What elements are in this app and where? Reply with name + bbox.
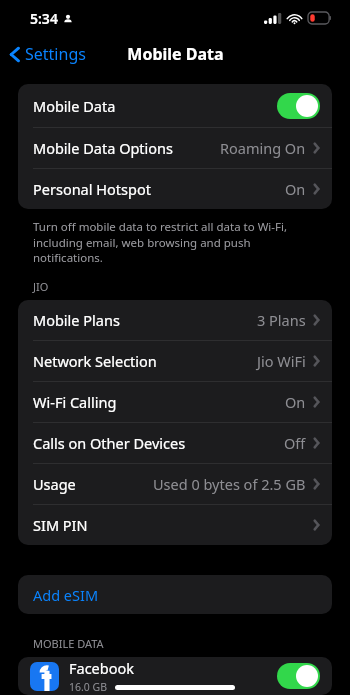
- staticText: On: [285, 392, 306, 412]
- staticText: Jio WiFi: [257, 351, 306, 371]
- staticText: Off: [284, 433, 306, 453]
- staticText: Mobile Data: [33, 96, 116, 116]
- button[interactable]: Usage: [18, 464, 332, 504]
- staticText: Mobile Data Options: [33, 138, 174, 158]
- button[interactable]: Settings: [0, 39, 94, 69]
- staticText: Calls on Other Devices: [33, 433, 186, 453]
- staticText: 3 Plans: [257, 310, 306, 330]
- button[interactable]: Mobile Plans: [18, 300, 332, 340]
- button[interactable]: Personal Hotspot: [18, 169, 332, 209]
- staticText: Wi-Fi Calling: [33, 392, 117, 412]
- staticText: SIM PIN: [33, 515, 88, 535]
- button[interactable]: SIM PIN: [18, 505, 332, 545]
- button[interactable]: Mobile Data: [18, 84, 332, 127]
- staticText: MOBILE DATA: [33, 636, 104, 651]
- button[interactable]: Network Selection: [18, 341, 332, 381]
- button[interactable]: Toggle: [277, 663, 320, 689]
- staticText: Usage: [33, 474, 76, 494]
- staticText: 5:34: [30, 9, 58, 28]
- button[interactable]: Wi-Fi Calling: [18, 382, 332, 422]
- staticText: Mobile Plans: [33, 310, 120, 330]
- staticText: Settings: [25, 43, 86, 65]
- staticText: Add eSIM: [33, 585, 99, 605]
- staticText: Mobile Data: [127, 43, 224, 65]
- button[interactable]: Facebook: [18, 657, 332, 695]
- button[interactable]: Calls on Other Devices: [18, 423, 332, 463]
- staticText: Turn off mobile data to restrict all dat…: [33, 219, 317, 265]
- staticText: Personal Hotspot: [33, 179, 151, 199]
- staticText: Used 0 bytes of 2.5 GB: [153, 474, 306, 494]
- staticText: 16.0 GB: [69, 680, 108, 694]
- button[interactable]: Add eSIM: [18, 575, 332, 614]
- staticText: Network Selection: [33, 351, 157, 371]
- staticText: JIO: [33, 279, 49, 294]
- staticText: Facebook: [69, 658, 135, 678]
- staticText: On: [285, 179, 306, 199]
- button[interactable]: Mobile Data Options: [18, 128, 332, 168]
- staticText: Roaming On: [220, 138, 306, 158]
- button[interactable]: Toggle: [277, 93, 320, 119]
